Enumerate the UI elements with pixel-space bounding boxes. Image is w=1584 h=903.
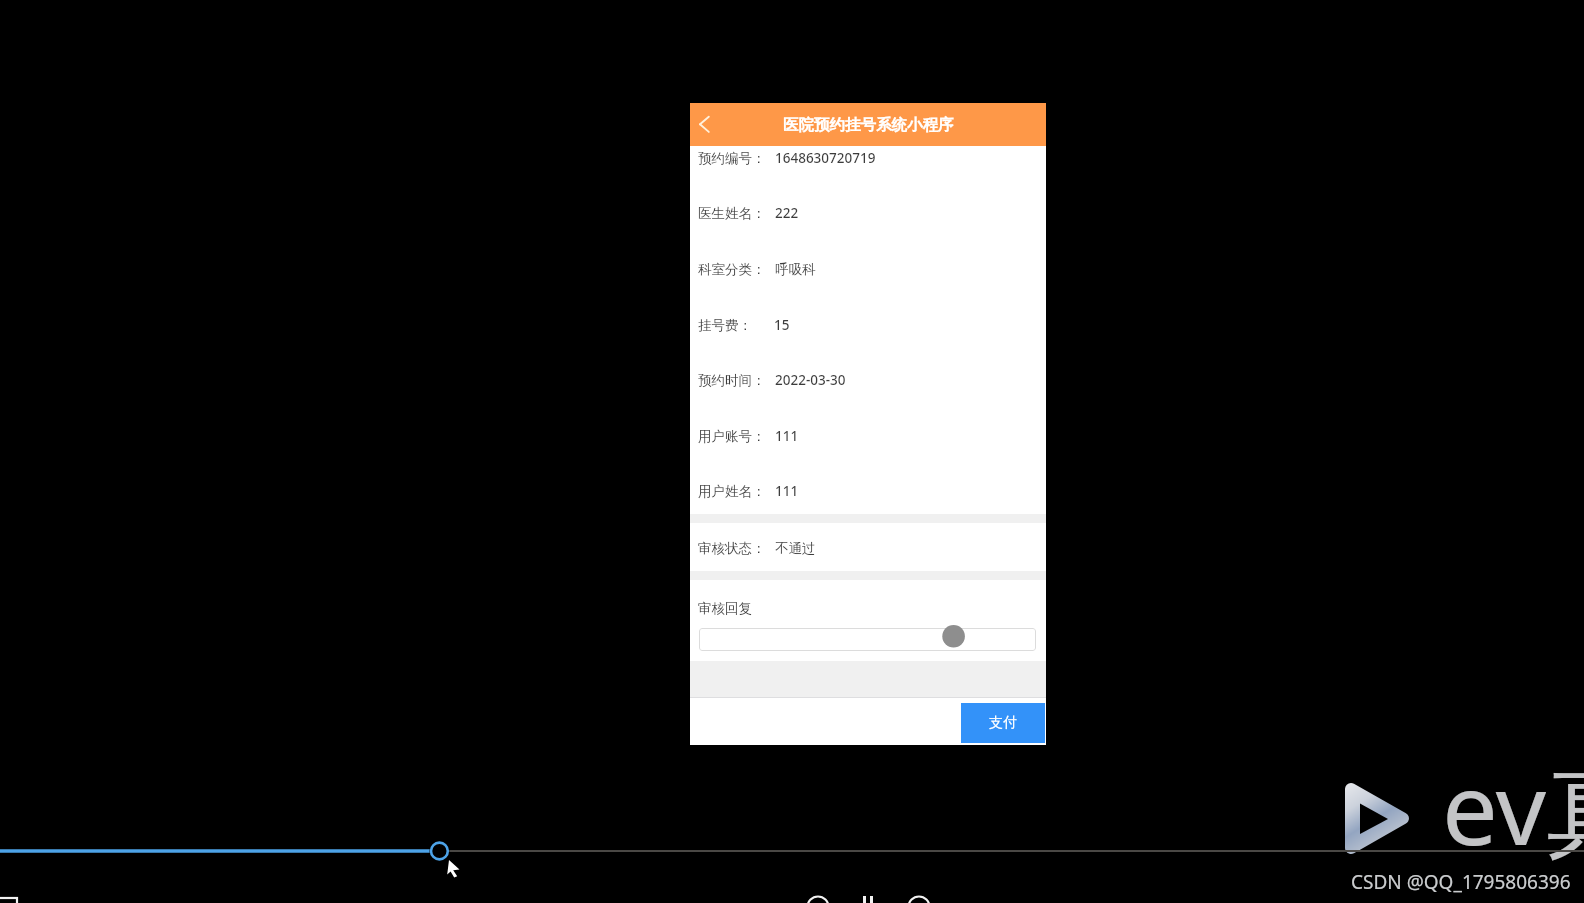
button[interactable]: 用户账号： bbox=[690, 421, 1046, 451]
staticText: 2022-03-30 bbox=[775, 371, 846, 389]
staticText: 预约时间： bbox=[698, 372, 766, 389]
button[interactable]: 医生姓名： bbox=[690, 198, 1046, 228]
staticText: CSDN @QQ_1795806396 bbox=[1351, 869, 1571, 895]
staticText: 111 bbox=[775, 482, 799, 500]
staticText: 支付 bbox=[989, 714, 1017, 732]
button[interactable]: 用户姓名： bbox=[690, 476, 1046, 506]
staticText: 15 bbox=[774, 316, 790, 334]
staticText: 1648630720719 bbox=[775, 149, 876, 167]
button[interactable]: 预约时间： bbox=[690, 365, 1046, 395]
button[interactable]: 科室分类： bbox=[690, 254, 1046, 284]
button[interactable]: 审核状态： bbox=[690, 533, 1046, 563]
staticText: 呼吸科 bbox=[775, 261, 816, 278]
button[interactable]: 预约编号： bbox=[690, 143, 1046, 173]
staticText: 用户姓名： bbox=[698, 483, 766, 500]
staticText: 审核回复 bbox=[698, 600, 752, 617]
staticText: 222 bbox=[775, 204, 799, 222]
staticText: 111 bbox=[775, 427, 799, 445]
staticText: 不通过 bbox=[775, 540, 816, 557]
staticText: 用户账号： bbox=[698, 428, 766, 445]
staticText: 预约编号： bbox=[698, 150, 766, 167]
button[interactable]: 支付 bbox=[961, 703, 1045, 743]
staticText: 挂号费： bbox=[698, 317, 752, 334]
button[interactable]: 审核回复输入框 bbox=[699, 628, 1036, 651]
staticText: ev真 bbox=[1442, 739, 1584, 874]
staticText: 科室分类： bbox=[698, 261, 766, 278]
button[interactable]: 挂号费： bbox=[690, 310, 1046, 340]
staticText: 医院预约挂号系统小程序 bbox=[783, 115, 954, 135]
staticText: 审核状态： bbox=[698, 540, 766, 557]
button[interactable]: Back bbox=[690, 108, 724, 142]
staticText: 医生姓名： bbox=[698, 205, 766, 222]
